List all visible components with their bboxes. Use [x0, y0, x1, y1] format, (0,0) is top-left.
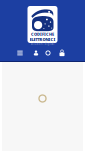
staticText: soluzioni digitali	[30, 42, 54, 46]
button[interactable]: Search	[45, 50, 51, 56]
staticText: ELETTRONICI	[29, 37, 55, 42]
button[interactable]: Menu	[17, 50, 23, 56]
staticText: CODIFICHE	[31, 31, 54, 37]
button[interactable]: Account	[33, 50, 39, 56]
button[interactable]: Cart	[59, 50, 65, 56]
